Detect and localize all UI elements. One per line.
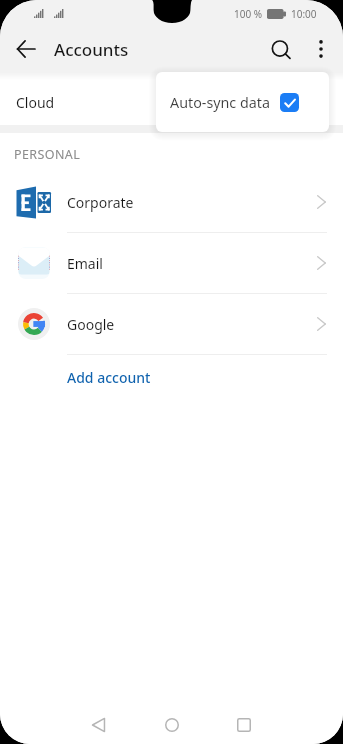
button[interactable]: Email [0,233,343,294]
button[interactable]: Home [149,702,195,744]
button[interactable]: More options [300,28,342,70]
staticText: Corporate [67,193,134,212]
staticText: 10:00 [291,7,317,21]
button[interactable]: Back [75,702,121,744]
button[interactable]: Add account [0,355,343,399]
button[interactable]: Google [0,294,343,355]
button[interactable]: Cloud [0,80,343,125]
button[interactable]: Recents [221,702,267,744]
staticText: Auto-sync data [170,93,270,112]
staticText: Cloud [16,93,55,112]
button[interactable]: Auto-sync data [156,72,329,132]
button[interactable]: Back [5,28,47,70]
button[interactable]: Search [260,29,302,71]
staticText: Add account [67,368,151,387]
staticText: Google [67,315,115,334]
staticText: Email [67,254,103,273]
staticText: PERSONAL [14,146,81,163]
staticText: 100 % [234,7,263,21]
button[interactable]: Corporate [0,172,343,233]
staticText: Accounts [54,38,129,61]
